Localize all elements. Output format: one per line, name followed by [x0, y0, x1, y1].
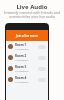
- staticText: 12 listeners: [15, 58, 29, 61]
- staticText: Live Audio: [0, 3, 64, 11]
- staticText: Room 4: [15, 76, 27, 80]
- button[interactable]: Room 4: [6, 74, 48, 85]
- staticText: 12 listeners: [15, 80, 29, 83]
- button[interactable]: [38, 67, 46, 71]
- staticText: 12 listeners: [15, 69, 29, 72]
- button[interactable]: [38, 56, 46, 60]
- staticText: Room 1: [15, 43, 27, 47]
- button[interactable]: Room 3: [6, 63, 48, 74]
- button[interactable]: [38, 78, 46, 82]
- button[interactable]: Room 1: [6, 41, 48, 52]
- button[interactable]: [38, 45, 46, 49]
- staticText: Room 3: [15, 65, 27, 69]
- staticText: 12 listeners: [15, 47, 29, 50]
- staticText: Instantly connect with friends and commu…: [4, 10, 60, 19]
- staticText: Room 2: [15, 54, 27, 58]
- staticText: Join a live room: [16, 34, 38, 38]
- button[interactable]: Room 2: [6, 52, 48, 63]
